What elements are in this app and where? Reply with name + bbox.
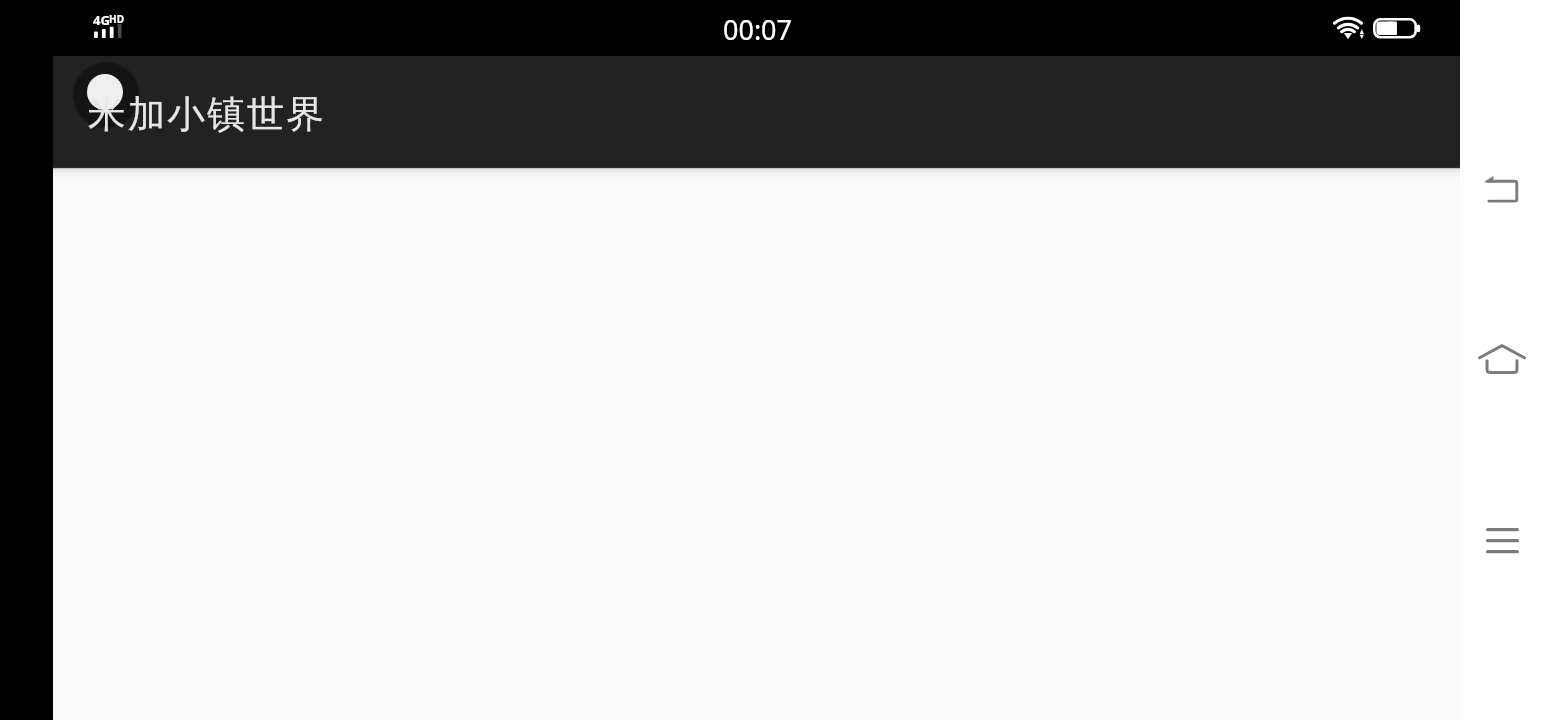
button[interactable]: Recent apps [1471,510,1533,572]
staticText: 4G [93,11,110,29]
button[interactable]: Home [1471,328,1533,390]
button[interactable]: Account [71,60,141,130]
button[interactable]: Back [1471,158,1533,220]
staticText: 00:07 [723,11,793,48]
staticText: HD [109,12,124,26]
staticText: 米加小镇世界 [88,91,327,138]
